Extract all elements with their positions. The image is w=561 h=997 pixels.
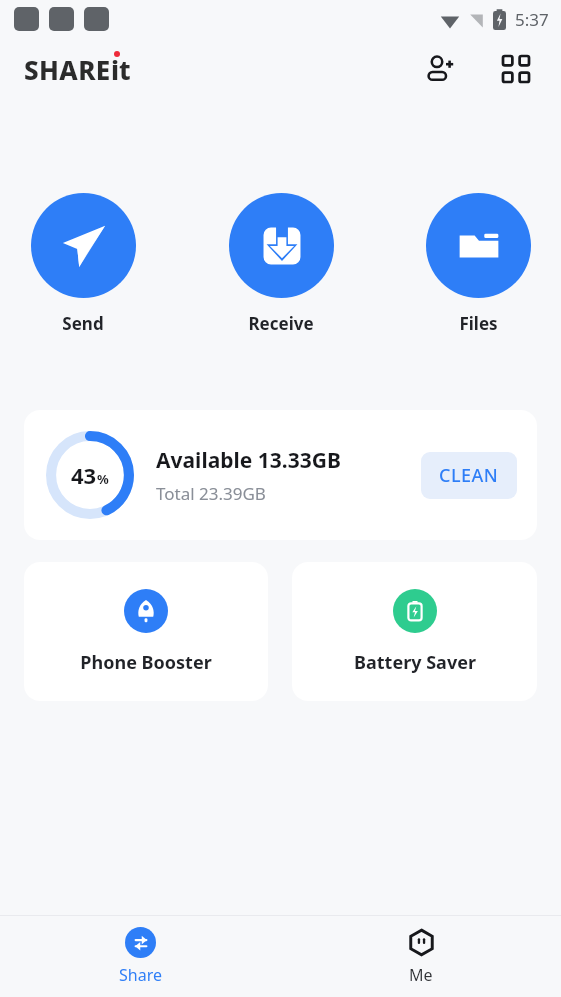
staticText: Receive xyxy=(248,312,314,335)
button[interactable]: Battery Saver xyxy=(292,562,537,701)
staticText: CLEAN xyxy=(439,463,499,488)
staticText: Send xyxy=(62,312,104,335)
staticText: Total 23.39GB xyxy=(156,482,266,505)
button[interactable]: 43 xyxy=(24,410,537,540)
staticText: 43 xyxy=(71,460,97,490)
staticText: Me xyxy=(409,964,433,986)
staticText: % xyxy=(97,470,109,488)
staticText: SHARE xyxy=(24,52,111,87)
button[interactable]: Phone Booster xyxy=(24,562,268,701)
staticText: Files xyxy=(459,312,498,335)
button[interactable]: Share xyxy=(80,921,200,992)
button[interactable]: Files xyxy=(425,193,531,335)
staticText: Available 13.33GB xyxy=(156,446,341,475)
staticText: Battery Saver xyxy=(354,650,476,675)
button[interactable]: Apps grid xyxy=(497,50,535,88)
button[interactable]: CLEAN xyxy=(421,452,517,499)
staticText: it xyxy=(111,52,131,87)
staticText: Phone Booster xyxy=(80,650,212,675)
button[interactable]: Receive xyxy=(228,193,334,335)
button[interactable]: Me xyxy=(361,921,481,992)
button[interactable]: Add friend xyxy=(421,50,459,88)
staticText: Share xyxy=(119,964,162,986)
staticText: 5:37 xyxy=(515,8,549,31)
button[interactable]: Send xyxy=(30,193,136,335)
